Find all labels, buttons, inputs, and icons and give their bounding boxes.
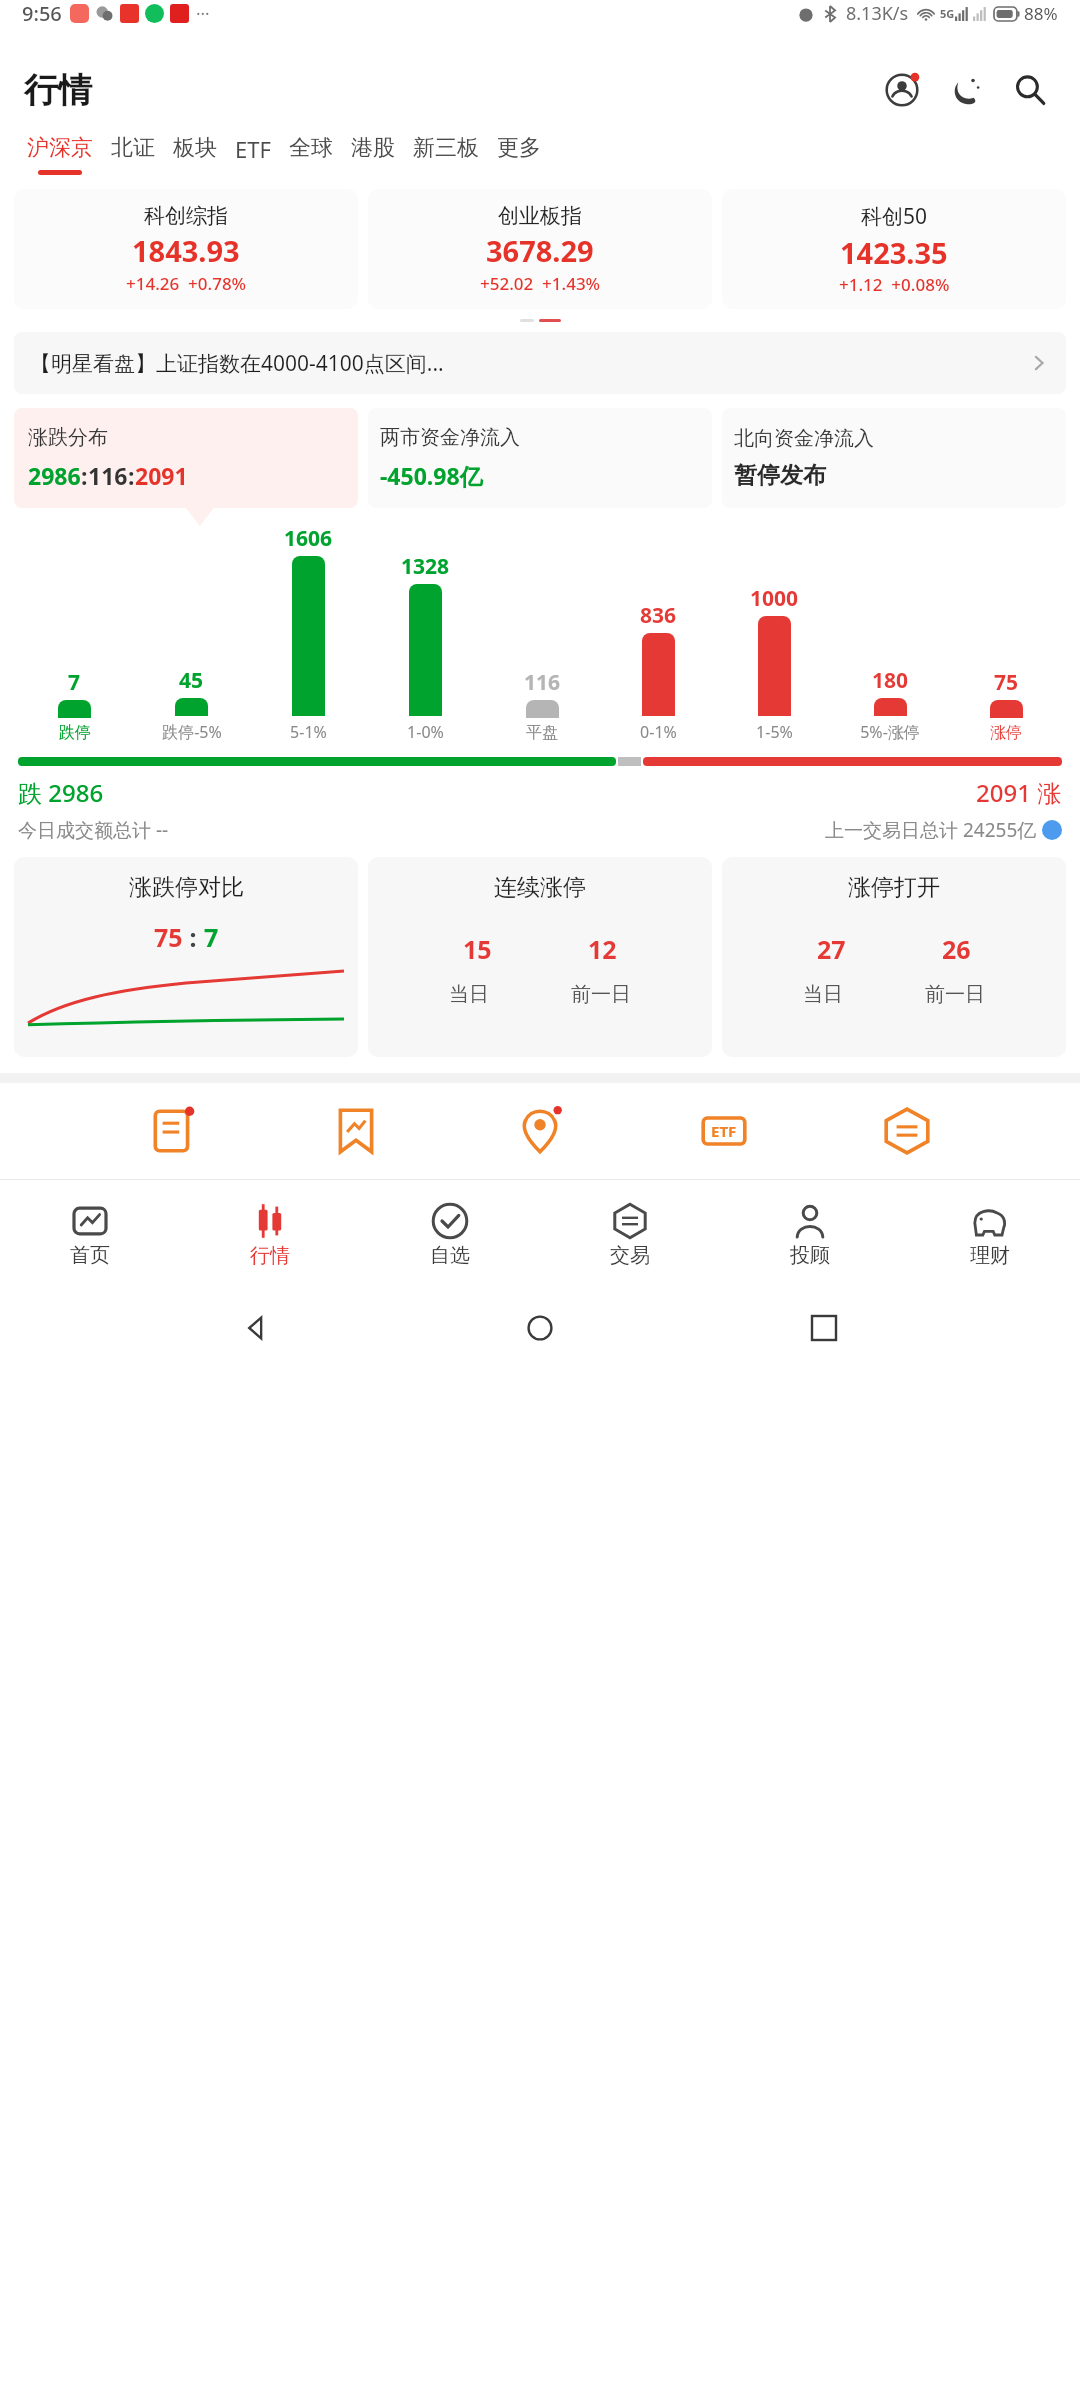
button[interactable]: 理财 <box>900 1180 1080 1288</box>
button[interactable]: 两市资金净流入 <box>368 408 712 508</box>
staticText: 116 <box>524 668 561 697</box>
staticText: 【明星看盘】上证指数在4000-4100点区间... <box>30 349 1028 378</box>
button[interactable]: ETF <box>226 132 280 179</box>
staticText: 前一日 <box>571 982 631 1007</box>
button[interactable]: 更多 <box>488 132 550 177</box>
button[interactable]: 创业板指 <box>368 189 712 309</box>
staticText: 当日 <box>803 982 843 1007</box>
staticText: 投顾 <box>790 1243 830 1268</box>
button[interactable]: 板块 <box>164 132 226 177</box>
button[interactable]: 涨跌分布 <box>14 408 358 508</box>
button[interactable]: 连续涨停 <box>368 857 712 1057</box>
staticText: 1328 <box>401 552 450 581</box>
staticText: 7 <box>204 920 219 954</box>
staticText: 暂停发布 <box>734 461 826 490</box>
staticText: 88% <box>1024 2 1058 25</box>
staticText: 8.13K/s <box>846 1 909 26</box>
staticText: +1.12 +0.08% <box>839 273 950 296</box>
staticText: 交易 <box>610 1243 650 1268</box>
staticText: 平盘 <box>526 723 558 743</box>
staticText: 27 <box>817 932 846 966</box>
button[interactable]: 港股 <box>342 132 404 177</box>
staticText: 3678.29 <box>486 231 594 270</box>
button[interactable]: 首页 <box>0 1180 180 1288</box>
staticText: 连续涨停 <box>494 873 586 902</box>
staticText: 0-1% <box>640 721 677 743</box>
staticText: 1-5% <box>756 721 793 743</box>
button[interactable]: Back <box>230 1301 284 1355</box>
staticText: 科创综指 <box>144 203 228 229</box>
staticText: ··· <box>196 2 210 25</box>
staticText: : <box>81 460 88 491</box>
staticText: 5G <box>940 6 955 21</box>
staticText: 2091 <box>135 460 188 491</box>
button[interactable]: 涨停打开 <box>722 857 1066 1057</box>
staticText: 行情 <box>250 1243 290 1268</box>
staticText: 1000 <box>750 584 799 613</box>
button[interactable]: Quick action 4 <box>693 1100 755 1162</box>
staticText: 12 <box>588 932 617 966</box>
staticText: 理财 <box>970 1243 1010 1268</box>
button[interactable]: 投顾 <box>720 1180 900 1288</box>
staticText: 5-1% <box>290 721 327 743</box>
staticText: 沪深京 <box>27 134 93 162</box>
button[interactable]: 涨跌停对比 <box>14 857 358 1057</box>
button[interactable]: Quick action 1 <box>142 1100 204 1162</box>
button[interactable]: 北向资金净流入 <box>722 408 1066 508</box>
staticText: 15 <box>463 932 492 966</box>
button[interactable]: 北证 <box>102 132 164 177</box>
staticText: 科创50 <box>861 202 928 231</box>
button[interactable]: 自选 <box>360 1180 540 1288</box>
staticText: 2986 <box>28 460 81 491</box>
staticText: 26 <box>942 932 971 966</box>
staticText: 涨跌分布 <box>28 425 108 450</box>
button[interactable]: 全球 <box>280 132 342 177</box>
staticText: 前一日 <box>925 982 985 1007</box>
staticText: 自选 <box>430 1243 470 1268</box>
staticText: 75 <box>994 668 1019 697</box>
staticText: 1843.93 <box>132 231 240 270</box>
staticText: 首页 <box>70 1243 110 1268</box>
staticText: 2091 涨 <box>976 776 1062 809</box>
staticText: 上一交易日总计 24255亿 <box>825 817 1037 843</box>
staticText: 港股 <box>351 134 395 162</box>
staticText: 1423.35 <box>840 233 948 272</box>
button[interactable]: 交易 <box>540 1180 720 1288</box>
staticText: 75 <box>154 920 183 954</box>
button[interactable]: 新三板 <box>404 132 488 177</box>
staticText: 涨停 <box>990 723 1022 743</box>
staticText: 836 <box>640 601 677 630</box>
button[interactable]: 【明星看盘】上证指数在4000-4100点区间... <box>14 332 1066 394</box>
staticText: ETF <box>711 1121 737 1141</box>
staticText: +14.26 +0.78% <box>126 272 247 295</box>
button[interactable]: 科创50 <box>722 189 1066 309</box>
staticText: 5%-涨停 <box>860 721 920 743</box>
button[interactable]: Home <box>513 1301 567 1355</box>
button[interactable]: Recents <box>797 1301 851 1355</box>
staticText: 北证 <box>111 134 155 162</box>
staticText: 跌 2986 <box>18 776 104 809</box>
staticText: 跌停 <box>59 723 91 743</box>
staticText: 45 <box>179 666 204 695</box>
button[interactable]: 科创综指 <box>14 189 358 309</box>
staticText: 1606 <box>284 524 333 553</box>
button[interactable]: Quick action 5 <box>876 1100 938 1162</box>
staticText: 全球 <box>289 134 333 162</box>
staticText: 116 <box>88 460 128 491</box>
button[interactable]: Night mode <box>940 64 992 116</box>
staticText: : <box>183 920 204 954</box>
button[interactable]: 行情 <box>180 1180 360 1288</box>
button[interactable]: Quick action 3 <box>509 1100 571 1162</box>
staticText: : <box>128 460 135 491</box>
button[interactable]: Quick action 2 <box>325 1100 387 1162</box>
staticText: 今日成交额总计 -- <box>18 817 169 843</box>
staticText: 涨跌停对比 <box>129 873 244 902</box>
button[interactable]: Search <box>1004 64 1056 116</box>
staticText: 跌停-5% <box>162 721 222 743</box>
staticText: 创业板指 <box>498 203 582 229</box>
staticText: 7 <box>68 668 81 697</box>
button[interactable]: Account <box>876 64 928 116</box>
staticText: 两市资金净流入 <box>380 425 520 450</box>
button[interactable]: 沪深京 <box>18 132 102 177</box>
staticText: 板块 <box>173 134 217 162</box>
